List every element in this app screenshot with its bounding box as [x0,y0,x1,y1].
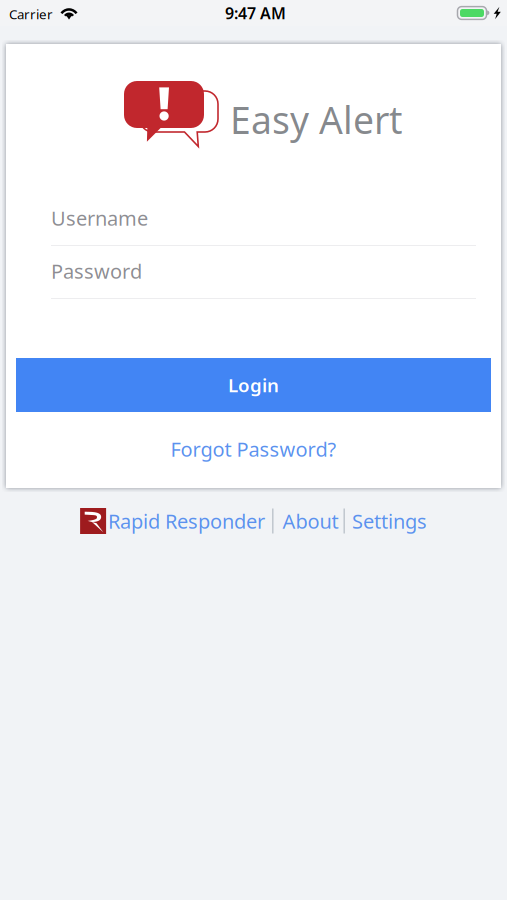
staticText: Forgot Password? [170,436,336,462]
button[interactable]: Rapid Responder [80,508,265,534]
button[interactable]: Settings [352,508,427,534]
staticText: 9:47 AM [225,2,286,24]
staticText: Login [228,373,279,397]
staticText: Rapid Responder [108,508,265,534]
button[interactable]: About [282,508,338,534]
staticText: Username [51,205,148,231]
button[interactable]: Forgot Password? [170,436,336,462]
staticText: Easy Alert [230,95,402,144]
staticText: Settings [352,508,427,534]
staticText: Password [51,258,142,284]
staticText: About [282,508,338,534]
staticText: Carrier [9,5,53,23]
button[interactable]: Login [16,358,491,412]
